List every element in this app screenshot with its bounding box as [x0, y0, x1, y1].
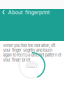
button[interactable]: Back — [1, 9, 6, 15]
staticText: When you feel the vibration, lift your f… — [3, 43, 61, 62]
staticText: About fingerprint — [8, 9, 50, 15]
